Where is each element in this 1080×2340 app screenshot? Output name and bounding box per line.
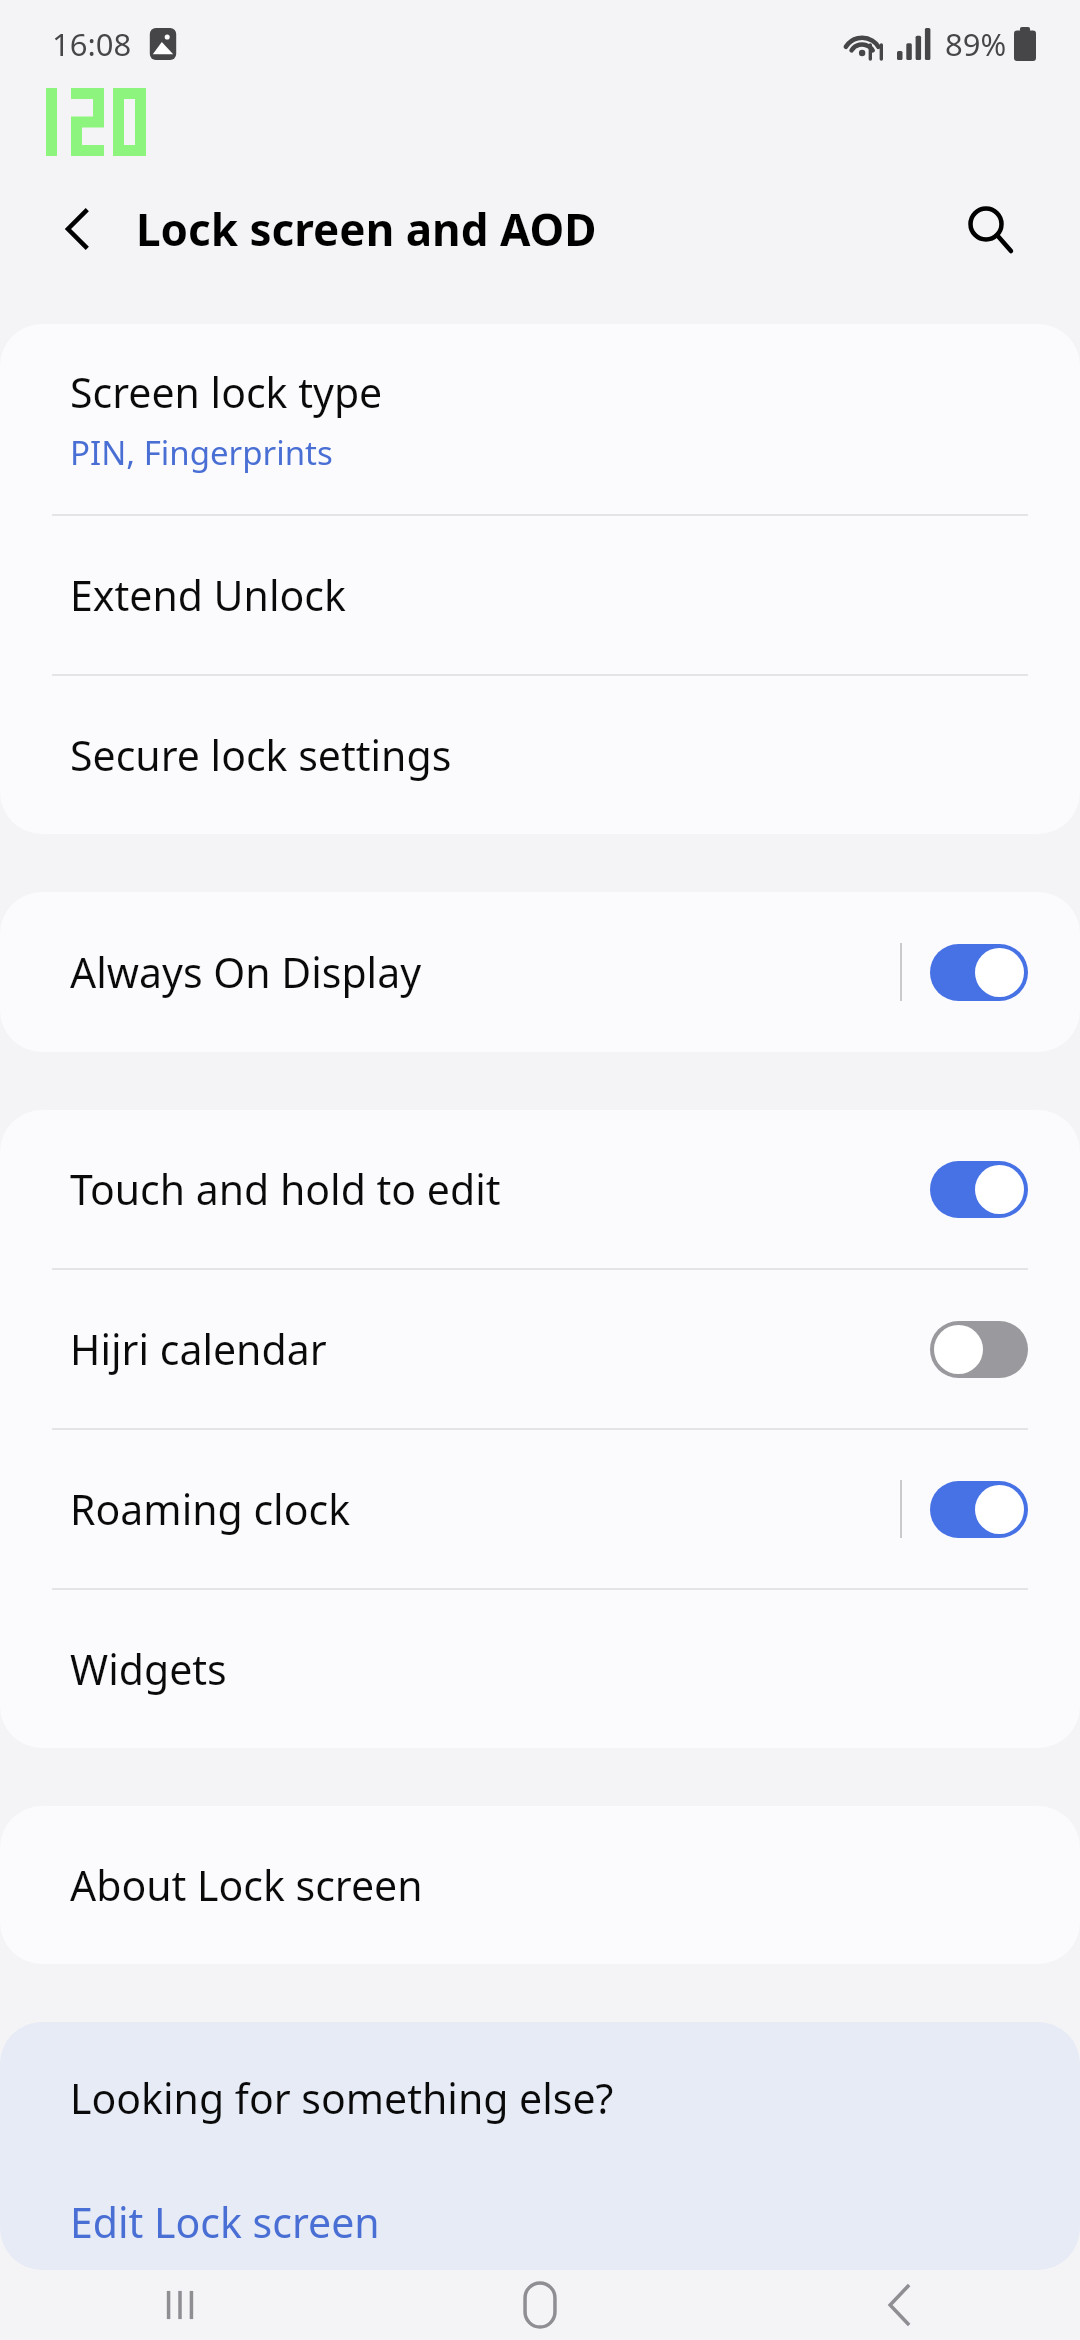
staticText: Screen lock type bbox=[70, 364, 383, 420]
button[interactable]: Switch off bbox=[930, 1321, 1028, 1378]
staticText: Lock screen and AOD bbox=[136, 199, 597, 259]
button[interactable]: Secure lock settings bbox=[0, 676, 1080, 834]
button[interactable]: Switch on bbox=[930, 1481, 1028, 1538]
staticText: Touch and hold to edit bbox=[70, 1161, 501, 1217]
staticText: Secure lock settings bbox=[70, 727, 452, 783]
staticText: Hijri calendar bbox=[70, 1321, 327, 1377]
button[interactable]: Back bbox=[720, 2270, 1080, 2340]
button[interactable]: Roaming clock bbox=[0, 1430, 1080, 1588]
button[interactable]: Home bbox=[360, 2270, 720, 2340]
button[interactable]: Widgets bbox=[0, 1590, 1080, 1748]
button[interactable]: Looking for something else? bbox=[0, 2022, 1080, 2174]
button[interactable]: Screen lock type bbox=[0, 324, 1080, 514]
button[interactable]: Edit Lock screen bbox=[0, 2174, 1080, 2270]
button[interactable]: Search bbox=[948, 187, 1032, 271]
staticText: About Lock screen bbox=[70, 1857, 423, 1913]
button[interactable]: Switch on bbox=[930, 944, 1028, 1001]
staticText: PIN, Fingerprints bbox=[70, 430, 333, 475]
button[interactable]: Touch and hold to edit bbox=[0, 1110, 1080, 1268]
staticText: Widgets bbox=[70, 1641, 227, 1697]
staticText: Edit Lock screen bbox=[70, 2194, 380, 2250]
staticText: 16:08 bbox=[52, 23, 132, 65]
button[interactable]: Extend Unlock bbox=[0, 516, 1080, 674]
staticText: Looking for something else? bbox=[70, 2070, 614, 2126]
button[interactable]: Always On Display bbox=[0, 892, 1080, 1052]
staticText: 89% bbox=[945, 23, 1007, 65]
button[interactable]: Back bbox=[42, 192, 116, 266]
staticText: Roaming clock bbox=[70, 1481, 351, 1537]
button[interactable]: Recent apps bbox=[0, 2270, 360, 2340]
button[interactable]: Switch on bbox=[930, 1161, 1028, 1218]
staticText: Always On Display bbox=[70, 944, 422, 1000]
staticText: Extend Unlock bbox=[70, 567, 346, 623]
button[interactable]: Hijri calendar bbox=[0, 1270, 1080, 1428]
button[interactable]: About Lock screen bbox=[0, 1806, 1080, 1964]
